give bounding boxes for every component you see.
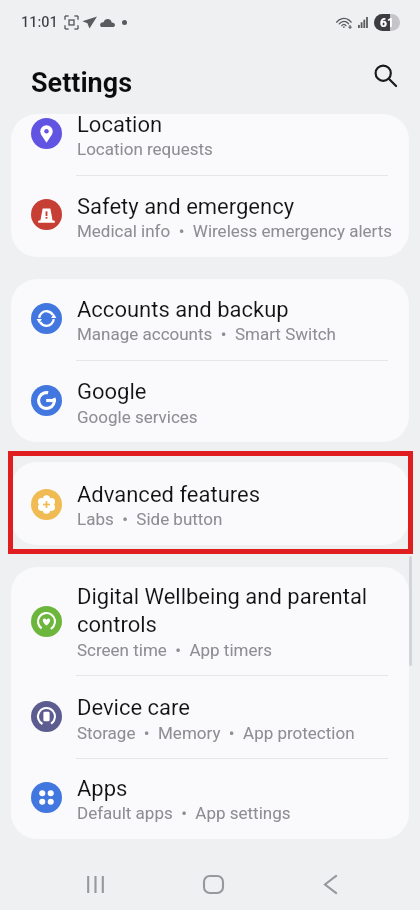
staticText: Accounts and backup	[77, 297, 289, 323]
staticText: Digital Wellbeing and parental	[77, 584, 368, 610]
button[interactable]	[11, 102, 409, 165]
staticText: Default apps • App settings	[77, 803, 291, 823]
staticText: 11:01	[21, 14, 58, 31]
staticText: Google	[77, 379, 147, 405]
staticText: Labs • Side button	[77, 509, 223, 529]
button[interactable]: Recents	[63, 852, 127, 910]
staticText: Storage • Memory • App protection	[77, 723, 355, 743]
button[interactable]	[11, 184, 409, 247]
button[interactable]	[11, 472, 409, 535]
button[interactable]	[11, 287, 409, 350]
button[interactable]	[11, 766, 409, 829]
staticText: Settings	[31, 67, 133, 99]
staticText: Google services	[77, 407, 198, 427]
button[interactable]: Back	[298, 852, 362, 910]
staticText: Device care	[77, 695, 191, 721]
staticText: Apps	[77, 776, 128, 802]
staticText: Location	[77, 112, 163, 138]
staticText: Manage accounts • Smart Switch	[77, 324, 336, 344]
button[interactable]	[11, 685, 409, 749]
button[interactable]	[11, 369, 409, 433]
staticText: Safety and emergency	[77, 194, 295, 220]
button[interactable]: Search	[360, 50, 410, 100]
staticText: Advanced features	[77, 482, 261, 508]
staticText: controls	[77, 612, 157, 638]
staticText: 61	[380, 16, 394, 30]
staticText: Location requests	[77, 139, 213, 159]
button[interactable]: Home	[181, 852, 245, 910]
button[interactable]	[11, 574, 409, 666]
staticText: Screen time • App timers	[77, 640, 273, 660]
staticText: Medical info • Wireless emergency alerts	[77, 221, 393, 241]
